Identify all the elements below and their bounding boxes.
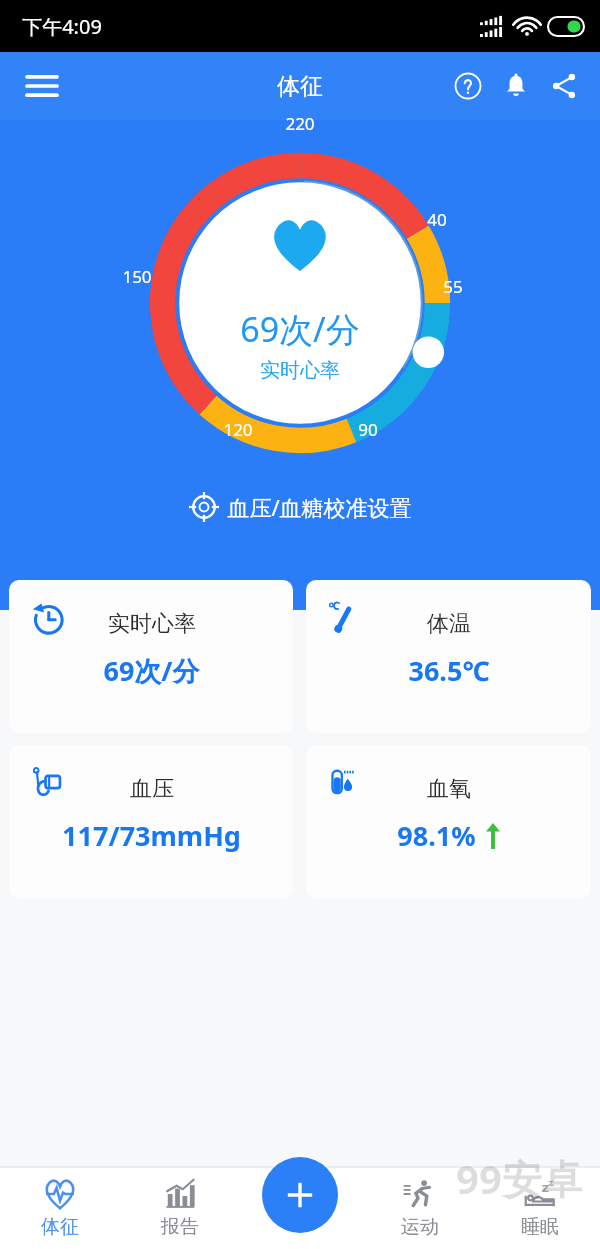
button[interactable]: 实时心率: [9, 580, 293, 733]
staticText: 血氧: [427, 775, 471, 803]
staticText: 90: [358, 418, 378, 441]
staticText: 98.1%: [397, 817, 476, 854]
button[interactable]: 血氧: [306, 745, 591, 898]
staticText: 69次/分: [240, 306, 360, 352]
button[interactable]: Notifications: [492, 62, 540, 110]
staticText: 体征: [277, 72, 323, 101]
staticText: 实时心率: [260, 358, 340, 383]
button[interactable]: 报告: [120, 1167, 240, 1249]
button[interactable]: Add: [262, 1157, 338, 1233]
button[interactable]: 体征: [0, 1167, 120, 1249]
button[interactable]: 运动: [360, 1167, 480, 1249]
staticText: 120: [223, 418, 253, 441]
staticText: 下午4:09: [22, 13, 102, 40]
staticText: 40: [427, 208, 447, 231]
button[interactable]: Help: [444, 62, 492, 110]
button[interactable]: 血压/血糖校准设置: [189, 492, 412, 522]
staticText: 报告: [161, 1215, 199, 1239]
staticText: 55: [443, 275, 463, 298]
button[interactable]: Share: [540, 62, 588, 110]
staticText: 血压: [130, 775, 174, 803]
button[interactable]: 血压: [9, 745, 293, 898]
staticText: 体征: [41, 1215, 79, 1239]
staticText: 36.5℃: [408, 652, 490, 689]
staticText: 运动: [401, 1215, 439, 1239]
staticText: 睡眠: [521, 1215, 559, 1239]
staticText: 220: [285, 112, 315, 135]
staticText: 99安卓: [456, 1151, 582, 1206]
staticText: 实时心率: [108, 610, 196, 638]
button[interactable]: 睡眠: [480, 1167, 600, 1249]
staticText: 117/73mmHg: [62, 817, 241, 854]
staticText: 体温: [427, 610, 471, 638]
button[interactable]: Menu: [14, 58, 70, 114]
staticText: 69次/分: [103, 652, 200, 689]
staticText: 血压/血糖校准设置: [227, 492, 412, 522]
button[interactable]: 体温: [306, 580, 591, 733]
staticText: 150: [122, 265, 152, 288]
